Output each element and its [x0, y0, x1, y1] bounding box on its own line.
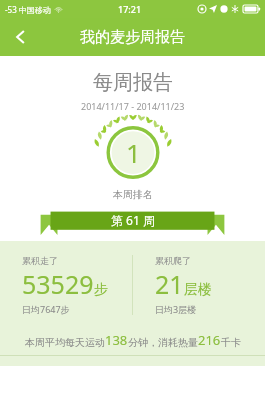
staticText: 层楼: [184, 281, 212, 299]
staticText: 21: [155, 267, 184, 301]
staticText: 累积走了: [22, 255, 58, 266]
staticText: 日均3层楼: [155, 303, 197, 315]
staticText: 216: [198, 331, 221, 349]
staticText: 第 61 周: [111, 212, 155, 228]
staticText: 138: [105, 331, 128, 349]
staticText: 日均7647步: [22, 303, 70, 315]
staticText: 17:21: [118, 3, 142, 15]
button[interactable]: Back: [0, 18, 42, 56]
staticText: 分钟，消耗热量: [128, 336, 198, 349]
staticText: 累积爬了: [155, 255, 191, 266]
staticText: 本周排名: [113, 188, 153, 201]
staticText: 53529: [22, 267, 94, 301]
staticText: 1: [126, 135, 141, 170]
staticText: 2014/11/17 - 2014/11/23: [81, 100, 185, 112]
staticText: 千卡: [221, 336, 241, 349]
staticText: 本周平均每天运动: [25, 336, 105, 349]
staticText: 每周报告: [93, 70, 173, 95]
staticText: -53 中国移动: [5, 4, 51, 15]
staticText: 步: [94, 281, 108, 299]
staticText: 我的麦步周报告: [80, 28, 185, 47]
